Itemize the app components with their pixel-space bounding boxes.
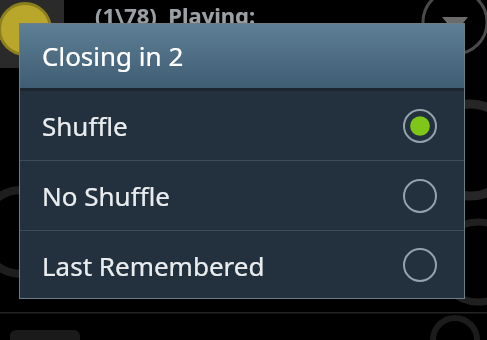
staticText: (1\78) Playing: [95,0,256,30]
button[interactable]: No Shuffle [19,161,465,230]
staticText: Closing in 2 [42,38,184,73]
staticText: No Shuffle [42,178,397,213]
button[interactable]: Last Remembered [19,231,465,299]
button[interactable]: Expand [421,0,487,56]
button[interactable]: Shuffle [19,91,465,160]
staticText: Last Remembered [42,248,397,283]
button[interactable]: Playlist [0,0,64,68]
staticText: Shuffle [42,108,397,143]
